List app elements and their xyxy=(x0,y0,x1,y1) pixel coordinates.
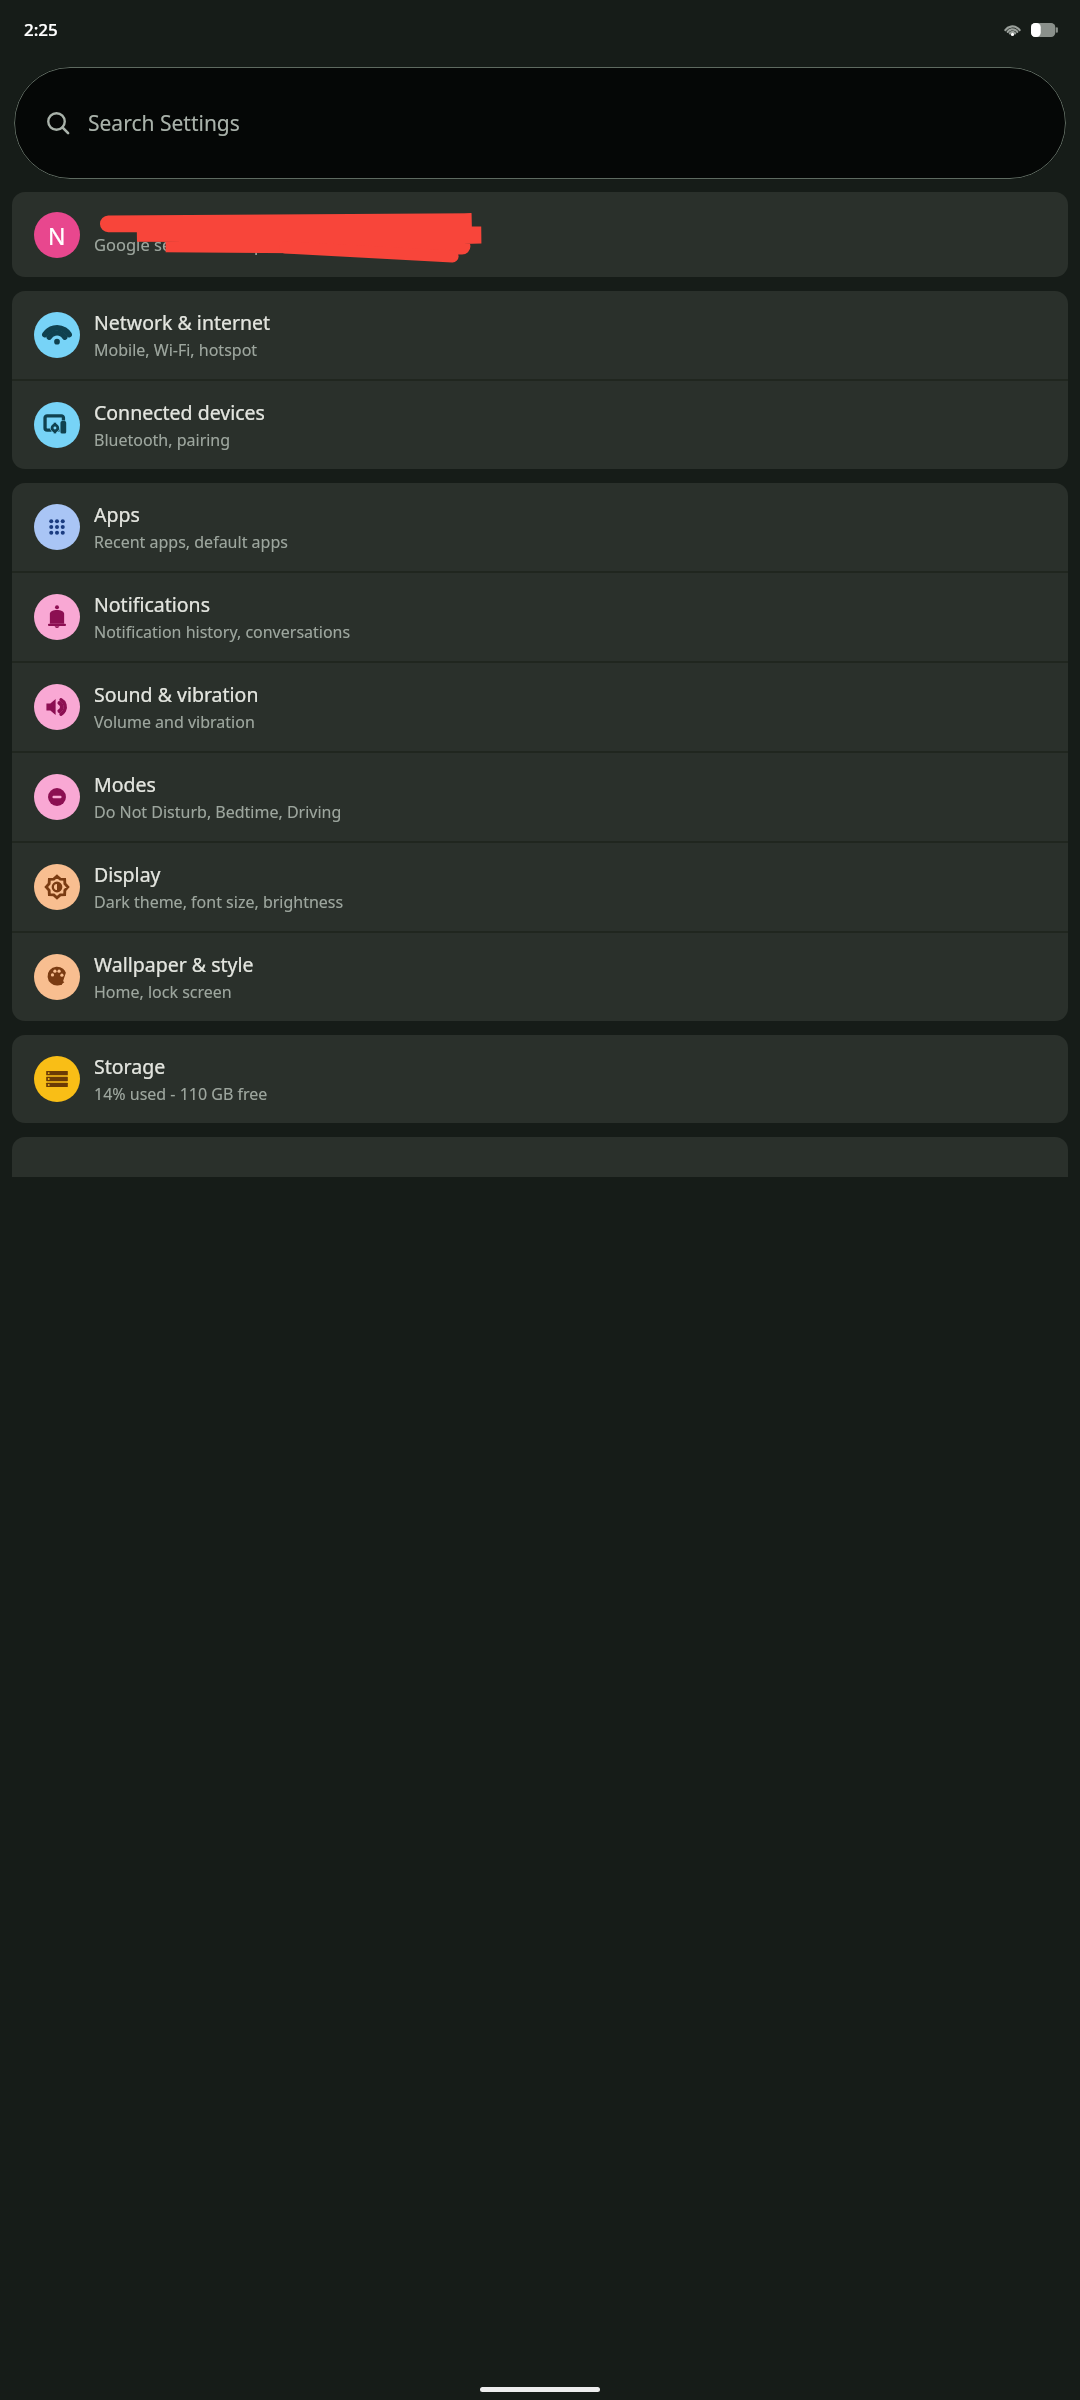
staticText: Display xyxy=(94,861,161,888)
staticText: Mobile, Wi-Fi, hotspot xyxy=(94,339,258,361)
button[interactable]: Sound & vibration xyxy=(12,663,1068,751)
staticText: Apps xyxy=(94,501,140,528)
staticText: 2:25 xyxy=(24,18,58,41)
button[interactable]: Storage xyxy=(12,1035,1068,1123)
staticText: Dark theme, font size, brightness xyxy=(94,891,344,913)
staticText: Volume and vibration xyxy=(94,711,255,733)
staticText: Notifications xyxy=(94,591,210,618)
staticText: Notification history, conversations xyxy=(94,621,351,643)
staticText: Recent apps, default apps xyxy=(94,531,288,553)
staticText: Storage xyxy=(94,1053,166,1080)
button[interactable]: Notifications xyxy=(12,573,1068,661)
button[interactable]: Network & internet xyxy=(12,291,1068,379)
staticText: Wallpaper & style xyxy=(94,951,254,978)
staticText: Bluetooth, pairing xyxy=(94,429,231,451)
button[interactable]: Search xyxy=(14,67,1066,179)
staticText: Do Not Disturb, Bedtime, Driving xyxy=(94,801,342,823)
staticText: Search Settings xyxy=(88,109,240,138)
staticText: Network & internet xyxy=(94,309,271,336)
staticText: N xyxy=(48,220,66,251)
button[interactable]: Modes xyxy=(12,753,1068,841)
button[interactable]: Connected devices xyxy=(12,381,1068,469)
staticText: Sound & vibration xyxy=(94,681,259,708)
button[interactable]: Wallpaper & style xyxy=(12,933,1068,1021)
staticText: 14% used - 110 GB free xyxy=(94,1083,268,1105)
button[interactable]: Display xyxy=(12,843,1068,931)
staticText: Modes xyxy=(94,771,156,798)
button[interactable]: Apps xyxy=(12,483,1068,571)
staticText: Home, lock screen xyxy=(94,981,232,1003)
button[interactable]: N xyxy=(12,192,1068,277)
staticText: Google services and preferences xyxy=(94,233,346,255)
other: Search xyxy=(46,111,71,136)
staticText: Connected devices xyxy=(94,399,265,426)
